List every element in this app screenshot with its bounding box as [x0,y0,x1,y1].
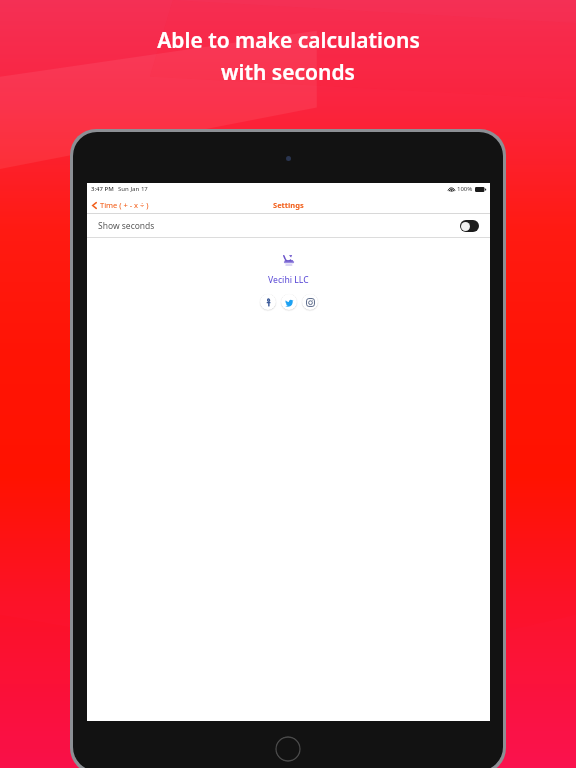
button[interactable]: Show seconds [87,214,490,238]
staticText: Settings [273,200,304,210]
staticText: with seconds [221,58,355,87]
button[interactable]: Show seconds toggle [460,220,479,232]
staticText: Time ( + - x ÷ ) [100,200,149,210]
staticText: Able to make calculations [157,26,420,55]
staticText: Vecihi LLC [268,274,309,286]
button[interactable]: Time ( + - x ÷ ) [87,198,155,212]
button[interactable]: Facebook [260,294,276,310]
button[interactable]: Instagram [302,294,318,310]
staticText: Show seconds [98,220,155,232]
button[interactable]: Twitter [281,294,297,310]
staticText: 3:47 PM [91,185,114,193]
staticText: Sun Jan 17 [118,185,148,193]
staticText: 100% [457,185,473,193]
